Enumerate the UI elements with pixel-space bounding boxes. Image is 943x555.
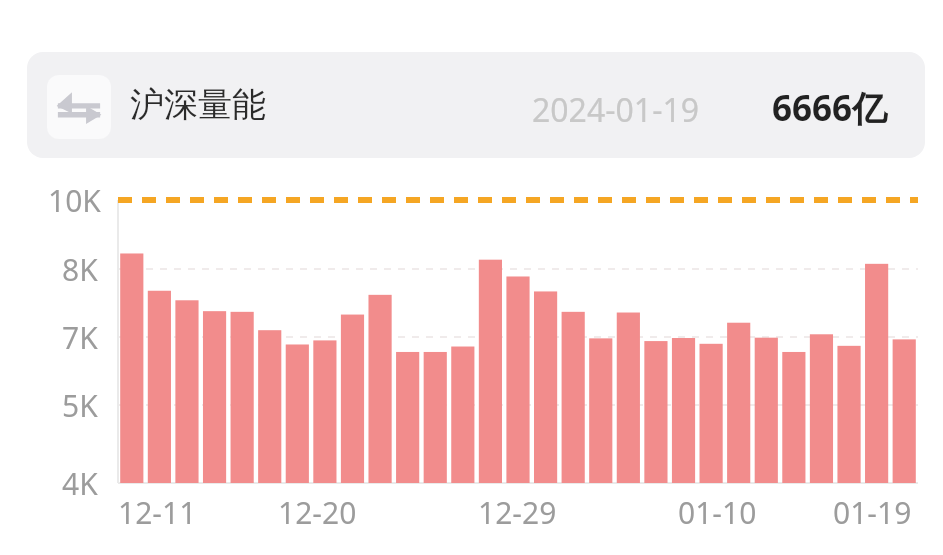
staticText: 12-11 xyxy=(118,492,197,533)
staticText: 2024-01-19 xyxy=(532,88,700,132)
staticText: 12-20 xyxy=(278,492,357,533)
button[interactable]: 沪深量能 xyxy=(27,52,925,158)
staticText: 4K xyxy=(62,463,118,504)
staticText: 5K xyxy=(62,385,118,426)
staticText: 01-19 xyxy=(833,492,912,533)
staticText: 01-10 xyxy=(678,492,757,533)
staticText: 6666亿 xyxy=(772,84,888,132)
staticText: 12-29 xyxy=(478,492,557,533)
other: 沪深量能 xyxy=(47,75,111,139)
staticText: 8K xyxy=(62,249,118,290)
staticText: 7K xyxy=(62,317,118,358)
staticText: 沪深量能 xyxy=(130,83,266,126)
staticText: 10K xyxy=(48,180,104,221)
